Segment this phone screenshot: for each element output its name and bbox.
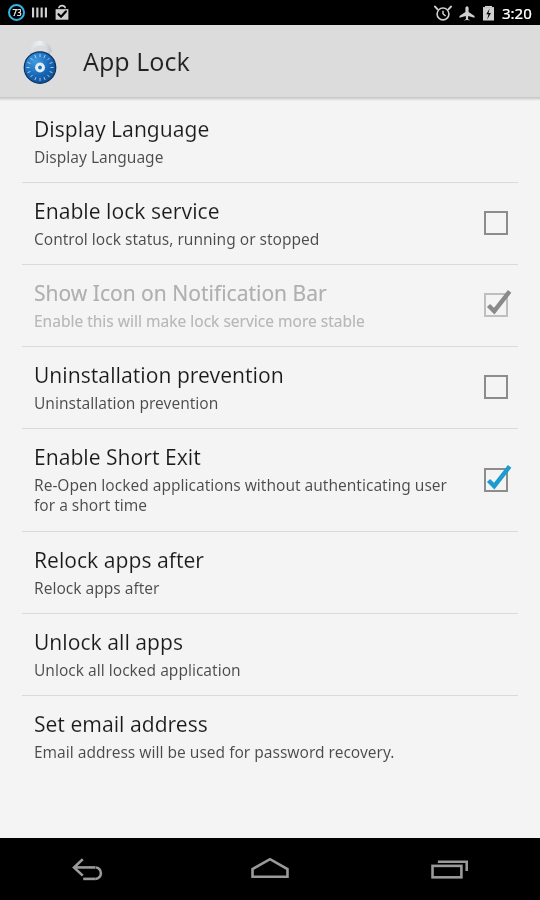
staticText: Re-Open locked applications without auth… bbox=[34, 474, 462, 516]
staticText: Unlock all locked application bbox=[34, 659, 241, 680]
button[interactable]: Set email address bbox=[0, 696, 540, 777]
button[interactable]: Enable lock service bbox=[474, 201, 518, 245]
staticText: Control lock status, running or stopped bbox=[34, 228, 320, 249]
staticText: 3:20 bbox=[502, 3, 532, 23]
staticText: Show Icon on Notification Bar bbox=[34, 279, 327, 308]
staticText: Uninstallation prevention bbox=[34, 361, 284, 390]
button[interactable]: Recent apps bbox=[360, 838, 540, 900]
button[interactable]: Back bbox=[0, 838, 180, 900]
staticText: Enable lock service bbox=[34, 197, 220, 226]
staticText: Uninstallation prevention bbox=[34, 392, 219, 413]
staticText: Enable this will make lock service more … bbox=[34, 310, 365, 331]
staticText: Set email address bbox=[34, 710, 208, 739]
button[interactable]: Enable Short Exit bbox=[0, 429, 540, 531]
button[interactable]: Uninstallation prevention bbox=[474, 365, 518, 409]
button[interactable]: Relock apps after bbox=[0, 532, 540, 613]
staticText: 73 bbox=[12, 7, 22, 18]
staticText: Display Language bbox=[34, 115, 210, 144]
button[interactable]: Display Language bbox=[0, 101, 540, 182]
staticText: App Lock bbox=[83, 44, 190, 78]
staticText: Display Language bbox=[34, 146, 164, 167]
staticText: Email address will be used for password … bbox=[34, 741, 395, 762]
button[interactable]: Enable Short Exit bbox=[474, 458, 518, 502]
button[interactable]: Uninstallation prevention bbox=[0, 347, 540, 428]
staticText: Unlock all apps bbox=[34, 628, 183, 657]
button[interactable]: Show Icon on Notification Bar bbox=[0, 265, 540, 346]
staticText: Relock apps after bbox=[34, 546, 205, 575]
button[interactable]: Show Icon on Notification Bar bbox=[474, 283, 518, 327]
staticText: Enable Short Exit bbox=[34, 443, 201, 472]
button[interactable]: Home bbox=[180, 838, 360, 900]
button[interactable]: Enable lock service bbox=[0, 183, 540, 264]
button[interactable]: Unlock all apps bbox=[0, 614, 540, 695]
staticText: Relock apps after bbox=[34, 577, 160, 598]
